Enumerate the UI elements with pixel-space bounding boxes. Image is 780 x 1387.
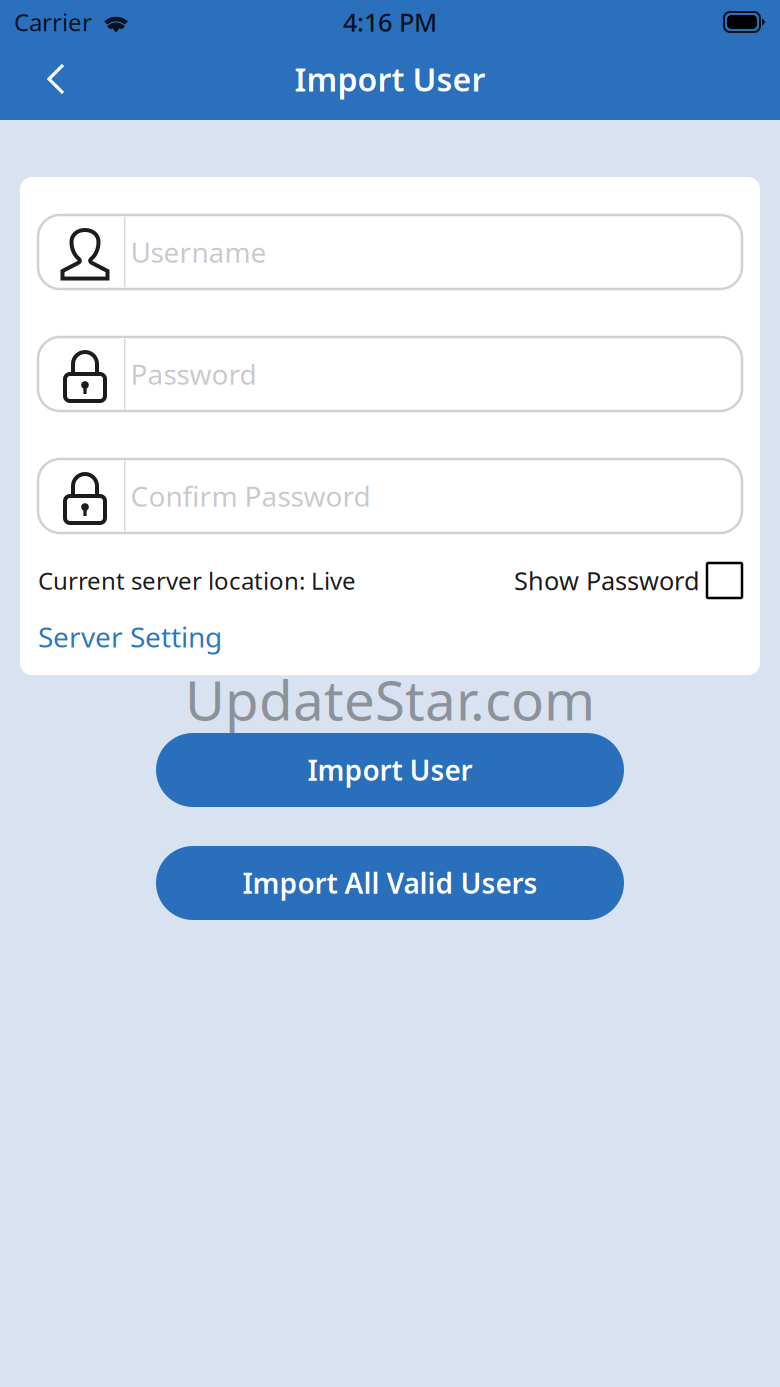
staticText: Confirm Password	[130, 477, 370, 515]
button[interactable]: Show Password	[514, 563, 742, 598]
staticText: Server Setting	[38, 618, 222, 655]
button[interactable]: Import All Valid Users	[156, 846, 624, 920]
staticText: Show Password	[514, 564, 700, 597]
staticText: Password	[130, 355, 256, 393]
staticText: Import User	[294, 58, 485, 100]
staticText: Import User	[307, 751, 472, 789]
staticText: Carrier	[14, 6, 92, 38]
button[interactable]: Server Setting	[38, 618, 222, 655]
staticText: 4:16 PM	[343, 5, 437, 39]
button[interactable]: Confirm Password	[38, 459, 742, 533]
staticText: Username	[130, 233, 266, 271]
staticText: Import All Valid Users	[242, 864, 537, 902]
button[interactable]: Import User	[156, 733, 624, 807]
staticText: Current server location: Live	[38, 565, 356, 596]
button[interactable]: Back	[26, 52, 86, 112]
button[interactable]: Password	[38, 337, 742, 411]
staticText: UpdateStar.com	[185, 663, 595, 736]
button[interactable]: Username	[38, 215, 742, 289]
